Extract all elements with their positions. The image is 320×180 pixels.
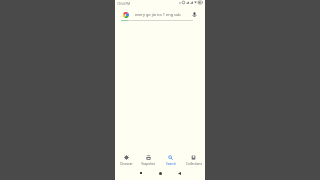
button[interactable]: Snapshot xyxy=(137,155,159,168)
staticText: Collections xyxy=(186,162,202,166)
staticText: every go jio no 1 eng sub xyxy=(135,12,181,17)
button[interactable]: Home xyxy=(156,169,164,177)
button[interactable]: Discover xyxy=(115,155,137,168)
staticText: 10:54 PM xyxy=(117,2,131,6)
staticText: Search xyxy=(166,162,176,166)
button[interactable]: Voice search xyxy=(191,11,198,18)
staticText: Snapshot xyxy=(141,162,155,166)
button[interactable]: Search xyxy=(159,155,182,168)
staticText: Discover xyxy=(120,162,133,166)
button[interactable]: Back xyxy=(175,169,183,177)
button[interactable]: Collections xyxy=(182,155,205,168)
button[interactable]: Recents xyxy=(137,169,145,177)
